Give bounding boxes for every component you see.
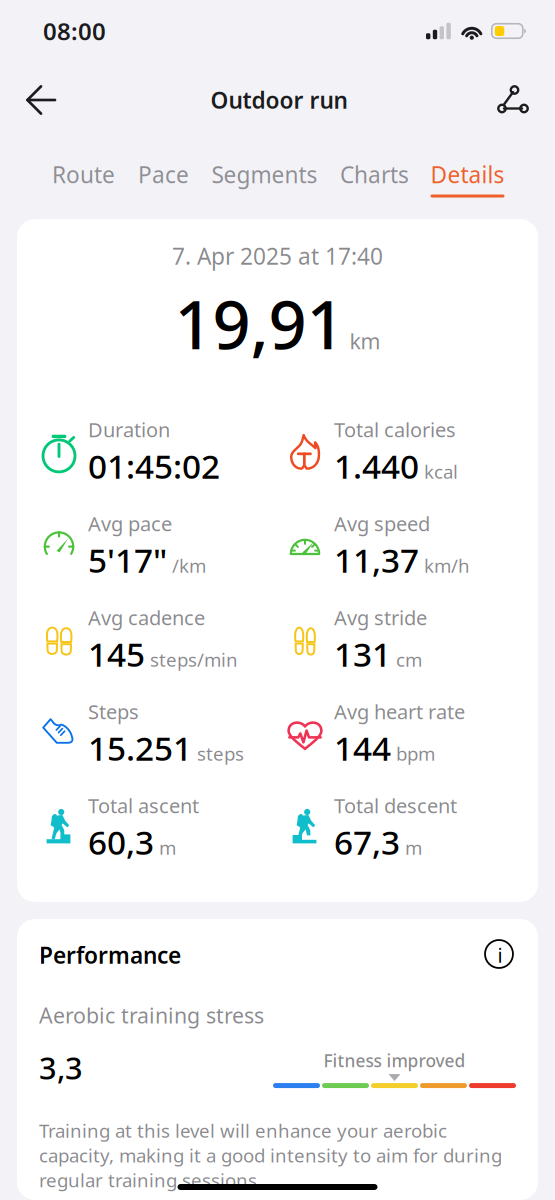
staticText: 08:00 <box>43 15 106 47</box>
button[interactable]: Details <box>430 159 504 197</box>
staticText: bpm <box>396 741 435 766</box>
staticText: km/h <box>424 553 470 578</box>
button[interactable]: Route <box>50 159 116 197</box>
staticText: 60,3 <box>88 820 154 864</box>
staticText: Fitness improved <box>323 1049 465 1072</box>
staticText: 131 <box>334 632 391 676</box>
staticText: m <box>159 835 176 860</box>
staticText: 5'17" <box>88 538 167 582</box>
staticText: cm <box>396 647 422 672</box>
staticText: Aerobic training stress <box>39 1001 264 1029</box>
staticText: Avg pace <box>88 510 172 537</box>
staticText: 1.440 <box>334 444 419 488</box>
staticText: km <box>349 327 380 355</box>
staticText: Charts <box>340 159 409 189</box>
staticText: 11,37 <box>334 538 419 582</box>
staticText: 3,3 <box>39 1047 83 1088</box>
staticText: Details <box>430 159 504 189</box>
staticText: /km <box>172 553 206 578</box>
button[interactable]: Share <box>488 72 538 127</box>
staticText: 19,91 <box>174 279 344 368</box>
button[interactable]: Pace <box>135 159 191 197</box>
staticText: Avg cadence <box>88 604 205 631</box>
staticText: i <box>497 942 502 968</box>
staticText: steps <box>197 741 244 766</box>
button[interactable]: Segments <box>210 159 318 197</box>
staticText: 144 <box>334 726 391 770</box>
staticText: 145 <box>88 632 145 676</box>
staticText: Avg speed <box>334 510 430 537</box>
staticText: 01:45:02 <box>88 444 220 488</box>
staticText: Avg stride <box>334 604 427 631</box>
button[interactable]: Charts <box>337 159 411 197</box>
staticText: 7. Apr 2025 at 17:40 <box>172 241 383 271</box>
button[interactable]: Info <box>484 939 516 971</box>
staticText: Performance <box>39 940 181 970</box>
staticText: Steps <box>88 698 139 725</box>
staticText: Route <box>52 159 115 189</box>
staticText: kcal <box>424 459 458 484</box>
staticText: steps/min <box>150 647 238 672</box>
staticText: Avg heart rate <box>334 698 465 725</box>
staticText: Total calories <box>334 416 456 443</box>
staticText: Total ascent <box>88 792 199 819</box>
staticText: Total descent <box>334 792 457 819</box>
button[interactable]: Back <box>12 69 70 131</box>
staticText: m <box>405 835 422 860</box>
staticText: 15.251 <box>88 726 192 770</box>
staticText: Training at this level will enhance your… <box>39 1118 502 1192</box>
staticText: Outdoor run <box>210 85 347 115</box>
staticText: Pace <box>138 159 189 189</box>
staticText: 67,3 <box>334 820 400 864</box>
staticText: Duration <box>88 416 170 443</box>
staticText: Segments <box>211 159 317 189</box>
